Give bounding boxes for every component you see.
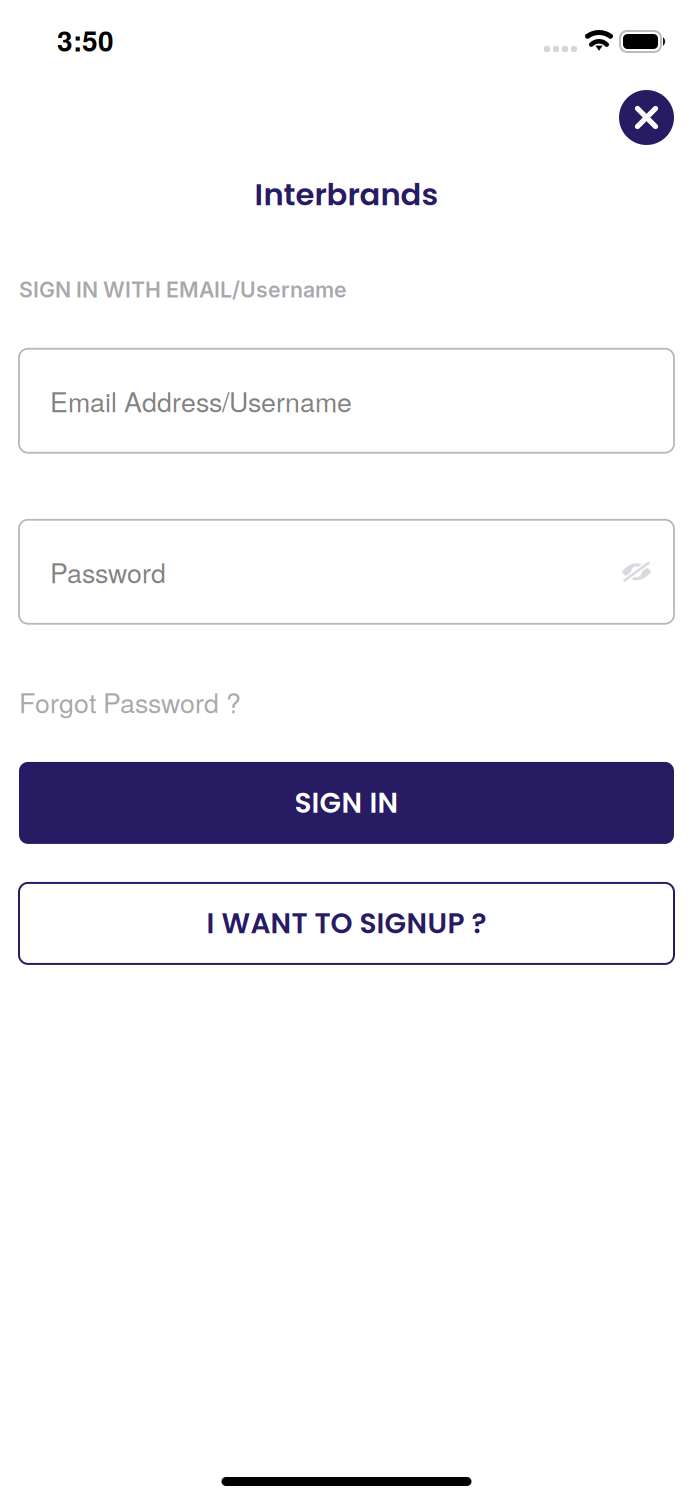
button[interactable]: I WANT TO SIGNUP ? <box>19 883 674 964</box>
button[interactable]: Close <box>619 90 674 145</box>
staticText: Interbrands <box>254 173 438 216</box>
button[interactable]: SIGN IN <box>19 762 674 844</box>
staticText: Forgot Password ? <box>19 683 241 721</box>
staticText: 3:50 <box>57 20 114 60</box>
staticText: SIGN IN WITH EMAIL/Username <box>19 277 347 303</box>
button[interactable]: Forgot Password ? <box>19 683 241 721</box>
staticText: I WANT TO SIGNUP ? <box>206 904 486 943</box>
staticText: Password <box>50 553 166 591</box>
staticText: SIGN IN <box>294 783 398 822</box>
button[interactable]: Show password <box>621 560 652 583</box>
staticText: Email Address/Username <box>50 382 352 420</box>
